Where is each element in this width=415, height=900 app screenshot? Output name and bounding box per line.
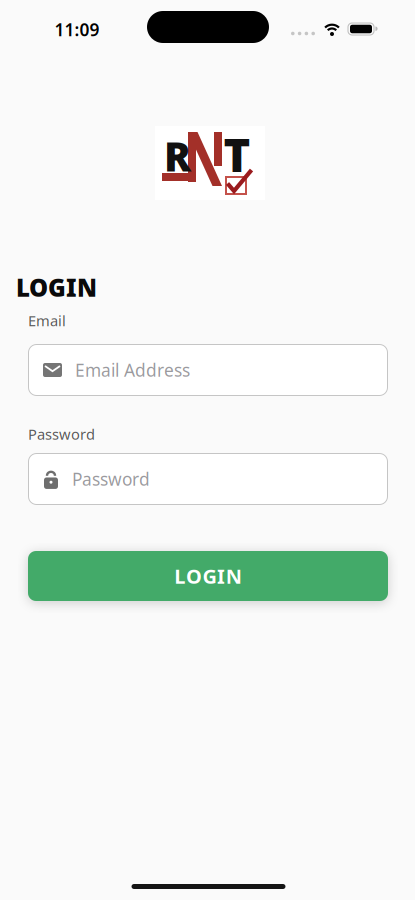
staticText: Password [72, 467, 150, 490]
staticText: LOGIN [16, 272, 97, 303]
staticText: R [164, 129, 191, 182]
staticText: Password [28, 424, 95, 444]
staticText: LOGIN [174, 563, 242, 589]
staticText: Email [28, 311, 66, 330]
staticText: T [223, 124, 250, 185]
button[interactable]: Email Address [28, 344, 388, 396]
staticText: Email Address [75, 358, 190, 381]
staticText: 11:09 [54, 18, 99, 41]
button[interactable]: LOGIN [28, 551, 388, 601]
button[interactable]: Password [28, 453, 388, 505]
